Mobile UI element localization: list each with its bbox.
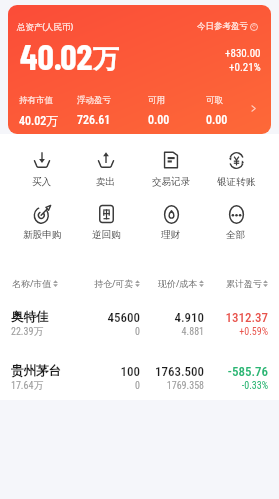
staticText: +830.00: [225, 47, 261, 60]
staticText: 总资产(人民币): [17, 21, 74, 33]
staticText: 0.00: [206, 113, 228, 127]
staticText: 浮动盈亏: [77, 95, 111, 106]
button[interactable]: 累计盈亏: [204, 278, 268, 289]
staticText: +0.59%: [204, 326, 268, 338]
button[interactable]: 奥特佳: [0, 297, 279, 351]
staticText: 万: [93, 43, 119, 76]
button[interactable]: 理财: [142, 198, 200, 241]
staticText: 1312.37: [204, 310, 268, 325]
button[interactable]: 资金详情: [249, 104, 258, 113]
staticText: 逆回购: [92, 229, 121, 241]
staticText: -0.33%: [204, 380, 268, 392]
button[interactable]: 全部: [207, 198, 265, 241]
staticText: 0: [76, 380, 140, 392]
staticText: 0: [76, 326, 140, 338]
staticText: 全部: [226, 229, 246, 241]
staticText: 现价/成本: [158, 277, 198, 289]
button[interactable]: 名称/市值: [12, 277, 76, 289]
staticText: 17.64万: [11, 379, 76, 392]
button[interactable]: 银证转账: [207, 145, 265, 188]
staticText: 1763.500: [140, 364, 204, 379]
button[interactable]: 今日参考盈亏: [197, 21, 258, 32]
button[interactable]: 现价/成本: [140, 277, 204, 289]
button[interactable]: 可用: [148, 95, 170, 127]
staticText: 45600: [76, 310, 140, 325]
button[interactable]: 新股申购: [13, 198, 71, 241]
staticText: 名称/市值: [12, 277, 52, 289]
staticText: 22.39万: [11, 325, 76, 338]
button[interactable]: 逆回购: [77, 198, 135, 241]
staticText: 累计盈亏: [226, 278, 262, 289]
staticText: 奥特佳: [11, 309, 76, 325]
staticText: 贵州茅台: [11, 363, 76, 379]
staticText: 726.61: [77, 113, 111, 127]
button[interactable]: 可取: [206, 95, 228, 127]
staticText: 40.02万: [19, 113, 59, 128]
staticText: 银证转账: [217, 176, 256, 188]
staticText: 100: [76, 364, 140, 379]
button[interactable]: [8, 5, 271, 134]
staticText: -585.76: [204, 364, 268, 379]
staticText: 可取: [206, 95, 223, 106]
staticText: 买入: [32, 176, 52, 188]
staticText: +0.21%: [229, 61, 261, 74]
staticText: 新股申购: [23, 229, 62, 241]
button[interactable]: 贵州茅台: [0, 351, 279, 405]
staticText: 持有市值: [19, 95, 53, 106]
staticText: 40.02: [20, 34, 93, 77]
staticText: 4.910: [140, 310, 204, 325]
button[interactable]: 持有市值: [19, 95, 59, 128]
button[interactable]: 买入: [13, 145, 71, 188]
staticText: 可用: [148, 95, 165, 106]
staticText: 交易记录: [152, 176, 191, 188]
staticText: 持仓/可卖: [94, 277, 134, 289]
staticText: 1769.358: [140, 380, 204, 392]
button[interactable]: 浮动盈亏: [77, 95, 111, 127]
button[interactable]: 持仓/可卖: [76, 277, 140, 289]
staticText: 理财: [161, 229, 181, 241]
button[interactable]: 卖出: [77, 145, 135, 188]
staticText: 0.00: [148, 113, 170, 127]
button[interactable]: 交易记录: [142, 145, 200, 188]
staticText: 卖出: [96, 176, 116, 188]
staticText: 4.881: [140, 326, 204, 338]
other: 盈亏说明: [250, 23, 258, 31]
staticText: 今日参考盈亏: [197, 21, 248, 32]
